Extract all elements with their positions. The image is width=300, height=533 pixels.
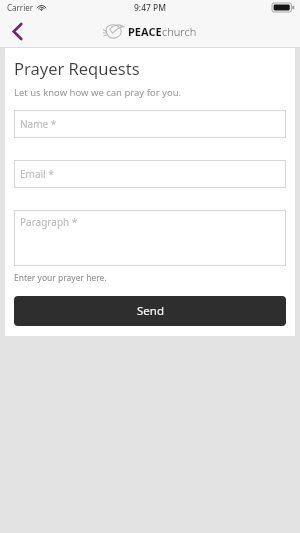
button[interactable]: Email *: [14, 160, 286, 188]
staticText: 9:47 PM: [134, 2, 167, 14]
staticText: Name *: [20, 117, 57, 131]
staticText: Carrier: [7, 2, 34, 13]
button[interactable]: Name *: [14, 110, 286, 138]
staticText: Email *: [20, 167, 54, 181]
staticText: Let us know how we can pray for you.: [14, 86, 182, 99]
staticText: Prayer Requests: [14, 57, 140, 79]
button[interactable]: Back: [0, 15, 34, 47]
button[interactable]: Send: [14, 296, 286, 326]
staticText: PEACE: [128, 24, 162, 39]
button[interactable]: Paragraph *: [14, 210, 286, 266]
staticText: Enter your prayer here.: [14, 272, 107, 284]
staticText: Paragraph *: [20, 215, 78, 229]
staticText: church: [162, 24, 197, 39]
staticText: Send: [137, 303, 164, 319]
